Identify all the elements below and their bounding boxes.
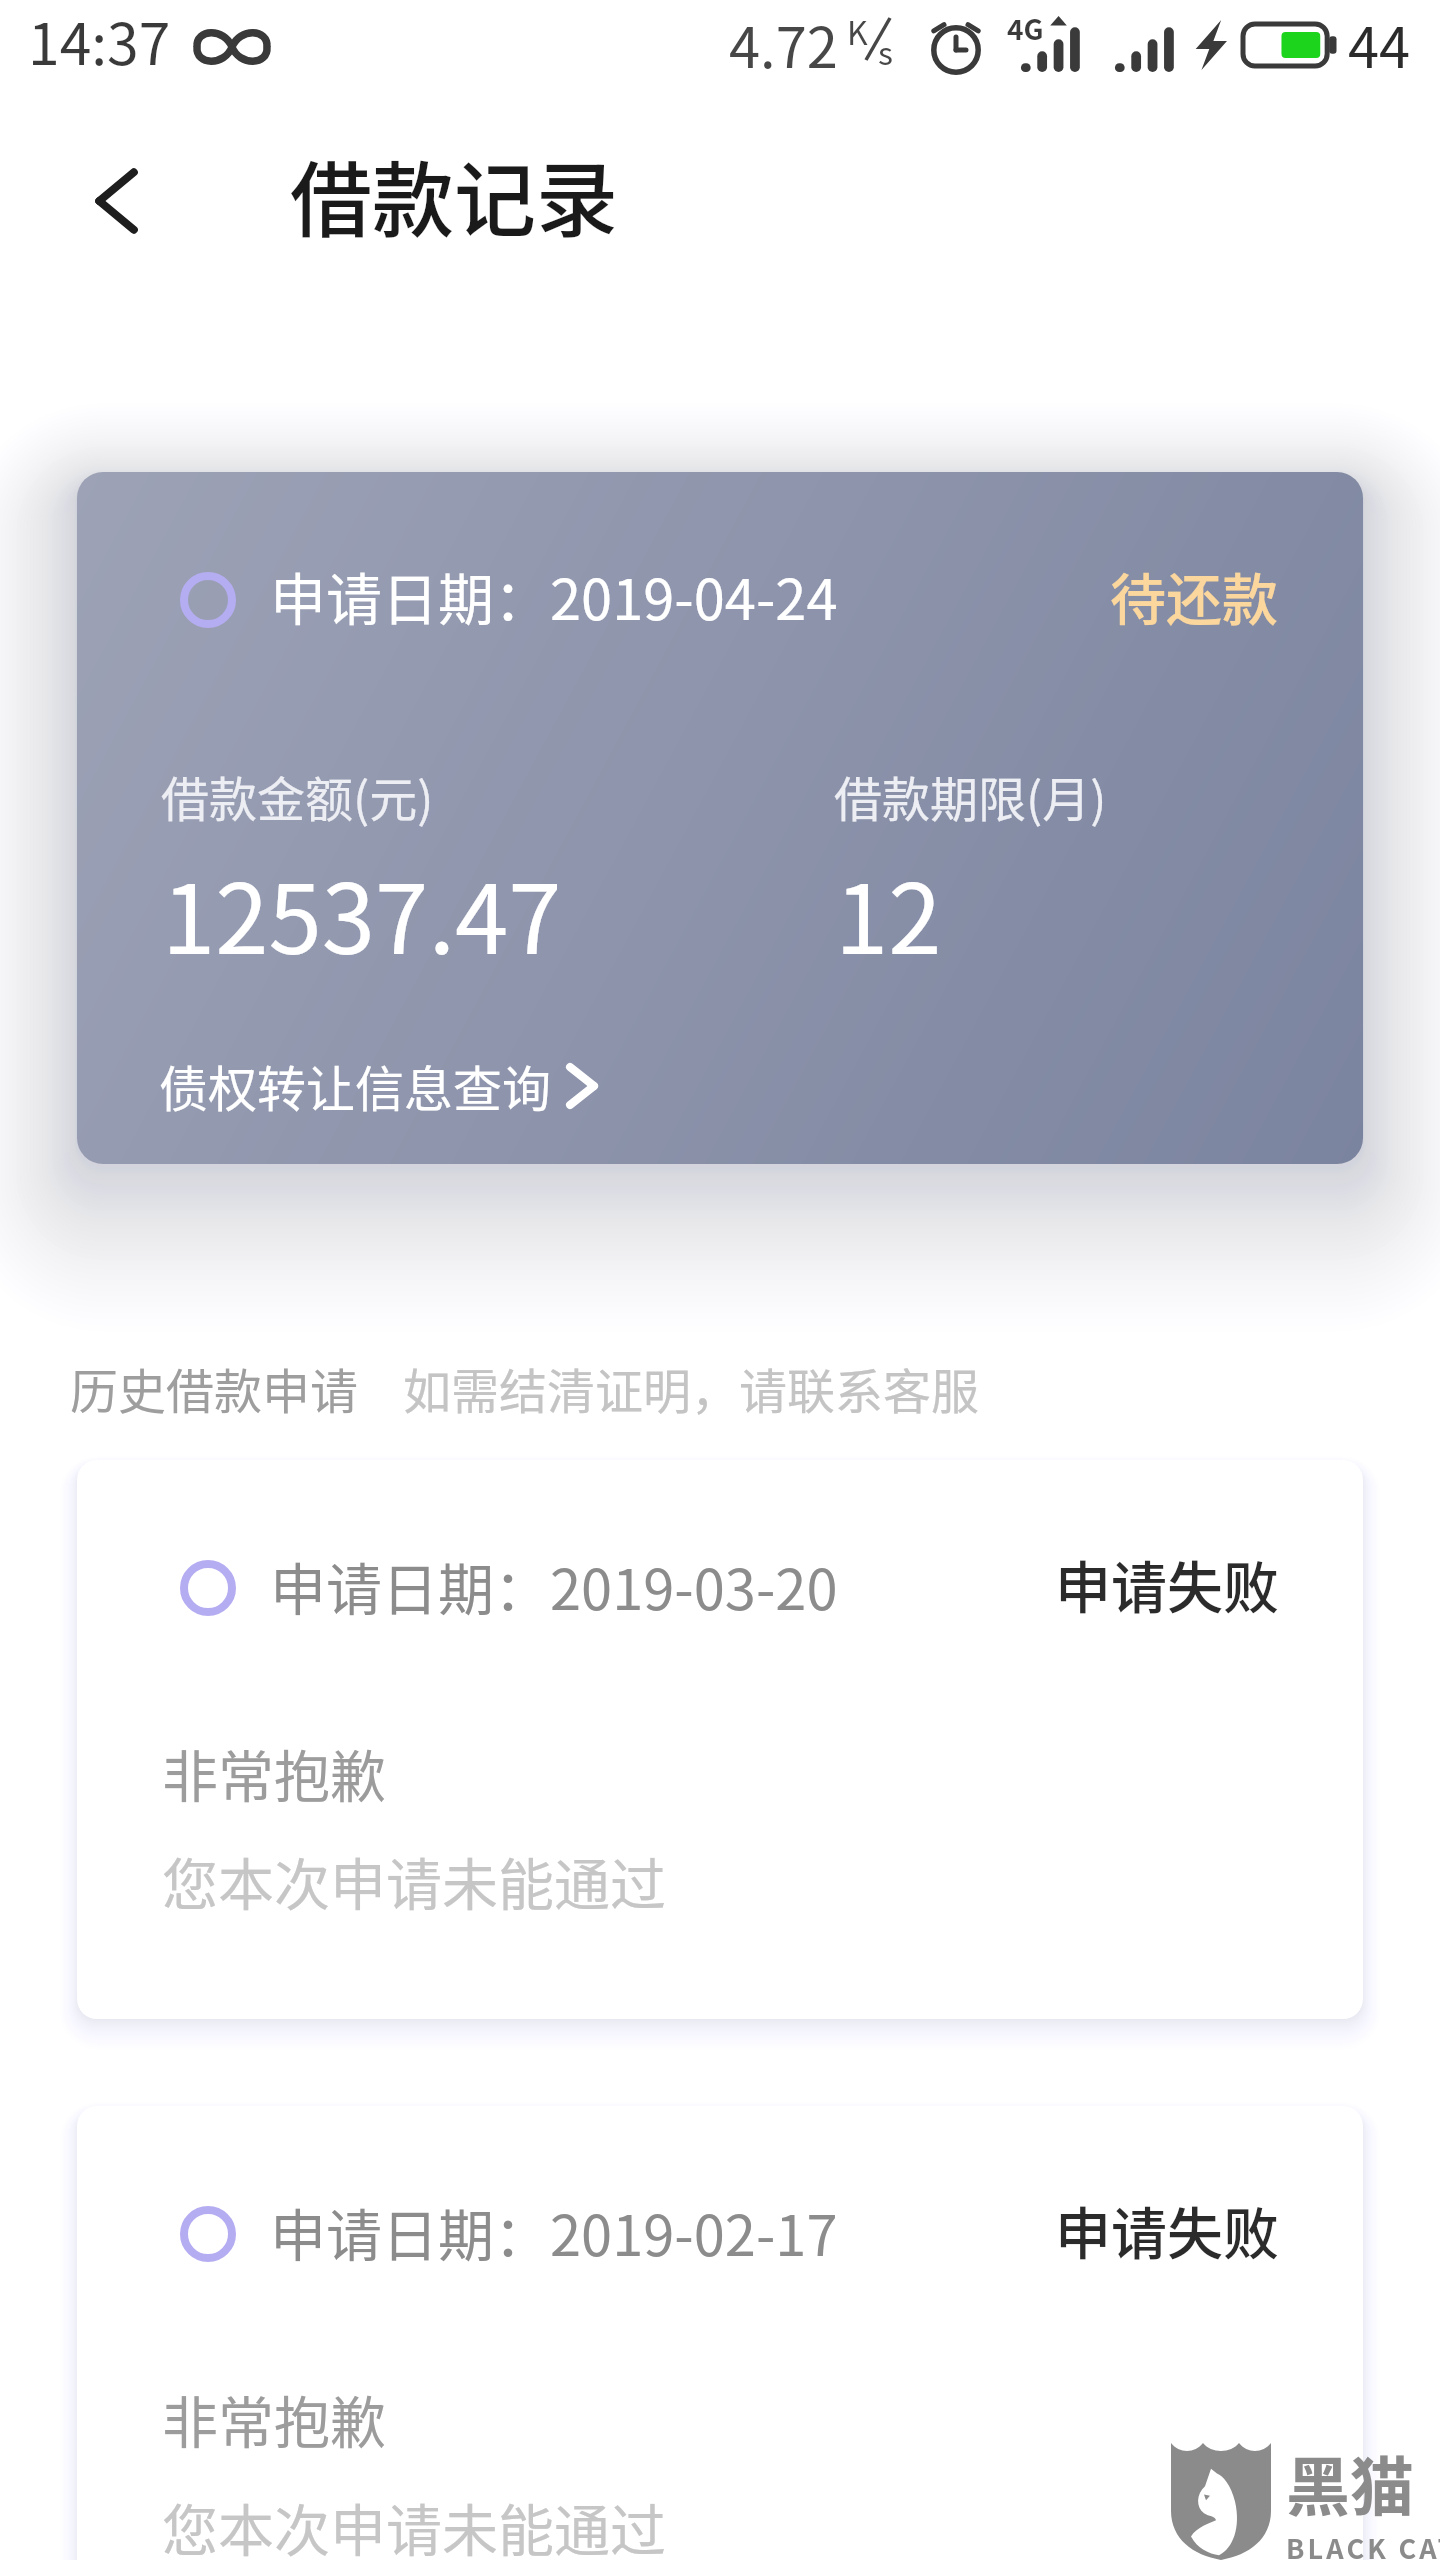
staticText: BLACK CAT xyxy=(1286,2528,1440,2560)
staticText: 申请日期：2019-02-17 xyxy=(270,2191,838,2272)
staticText: 您本次申请未能通过 xyxy=(162,2486,666,2560)
staticText: 您本次申请未能通过 xyxy=(162,1840,666,1921)
staticText: 申请失败 xyxy=(1055,1543,1279,1624)
staticText: 44 xyxy=(1348,3,1411,84)
staticText: s xyxy=(878,28,893,74)
button[interactable]: 申请日期：2019-03-20 xyxy=(77,1460,1363,2019)
staticText: 非常抱歉 xyxy=(162,1732,386,1813)
staticText: 4.72 xyxy=(729,3,838,84)
staticText: 非常抱歉 xyxy=(162,2378,386,2459)
staticText: 申请日期：2019-04-24 xyxy=(270,555,838,636)
button[interactable]: 申请日期：2019-02-17 xyxy=(77,2106,1363,2560)
button[interactable]: Back xyxy=(63,146,173,256)
staticText: K xyxy=(847,8,868,54)
button[interactable]: 申请日期：2019-04-24 xyxy=(77,472,1363,1164)
staticText: 黑猫 xyxy=(1286,2436,1414,2529)
staticText: 历史借款申请 xyxy=(70,1353,359,1423)
staticText: 借款记录 xyxy=(290,135,619,254)
staticText: 借款金额(元) xyxy=(161,761,434,831)
staticText: 申请失败 xyxy=(1055,2189,1279,2270)
staticText: 12 xyxy=(835,843,942,982)
button[interactable]: 债权转让信息查询 xyxy=(159,1050,598,1121)
staticText: 借款期限(月) xyxy=(834,761,1107,831)
staticText: 14:37 xyxy=(28,0,171,82)
staticText: 申请日期：2019-03-20 xyxy=(270,1545,838,1626)
staticText: 如需结清证明，请联系客服 xyxy=(403,1353,980,1423)
staticText: 债权转让信息查询 xyxy=(159,1050,552,1121)
staticText: 4G xyxy=(1007,8,1044,49)
staticText: 待还款 xyxy=(1110,555,1278,636)
staticText: 12537.47 xyxy=(162,843,562,982)
